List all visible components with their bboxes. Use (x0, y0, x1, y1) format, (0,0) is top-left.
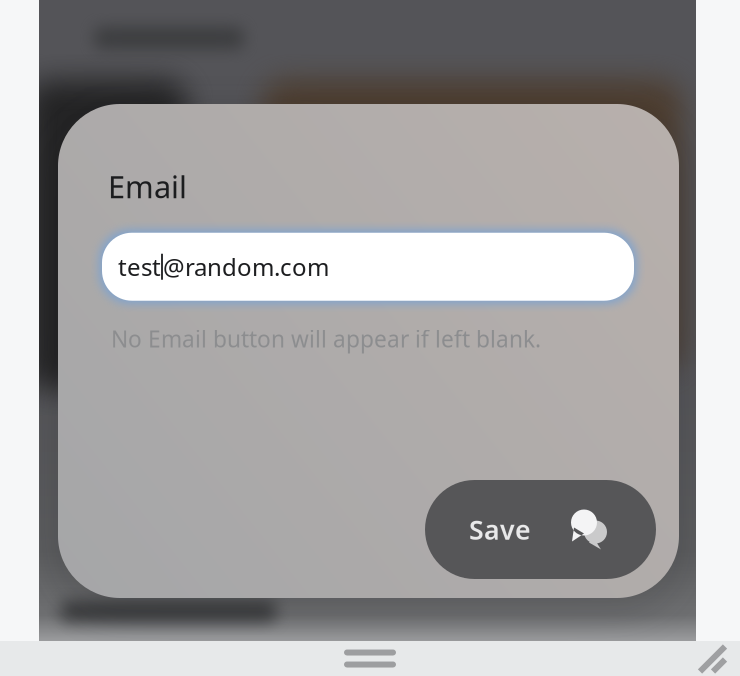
button[interactable]: test (102, 233, 634, 301)
button[interactable]: Save (425, 480, 656, 579)
staticText: test (118, 251, 161, 283)
staticText: Save (469, 512, 531, 547)
staticText: @random.com (163, 251, 329, 283)
staticText: Email (108, 166, 187, 207)
staticText: No Email button will appear if left blan… (111, 324, 541, 354)
